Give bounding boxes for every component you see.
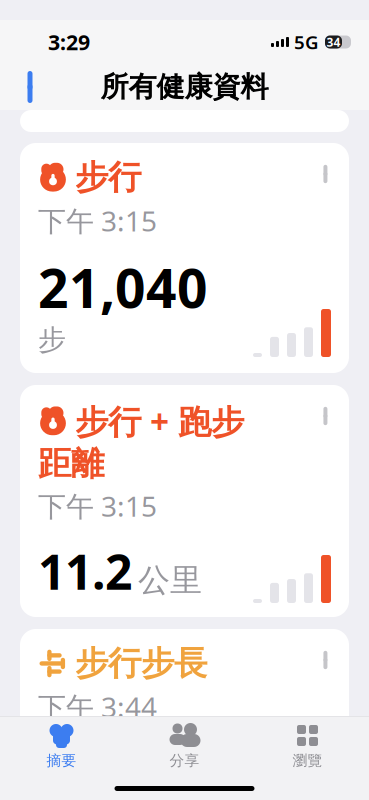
staticText: 34	[326, 34, 340, 50]
staticText: 步行步長	[75, 643, 207, 684]
staticText: 下午 3:44	[38, 688, 157, 725]
staticText: 5G	[294, 30, 319, 54]
staticText: 下午 3:15	[38, 202, 157, 239]
staticText: 瀏覽	[292, 751, 322, 769]
button[interactable]: Back	[8, 65, 52, 109]
staticText: 步行 + 跑步	[75, 399, 244, 443]
button[interactable]: 步行	[20, 143, 349, 373]
staticText: 步	[38, 323, 66, 357]
button[interactable]: 分享	[123, 715, 246, 769]
staticText: 距離	[38, 443, 104, 484]
staticText: 公里	[138, 561, 202, 600]
staticText: 11.2	[38, 539, 132, 603]
staticText: 所有健康資料	[100, 70, 268, 104]
button[interactable]: 步行 + 跑步	[20, 385, 349, 617]
button[interactable]: 摘要	[0, 715, 123, 769]
staticText: 3:29	[48, 28, 90, 56]
staticText: 下午 3:15	[38, 487, 157, 524]
staticText: 分享	[169, 751, 199, 769]
button[interactable]: 步行步長	[20, 629, 349, 800]
staticText: 步行	[75, 157, 141, 198]
staticText: 21,040	[38, 252, 208, 323]
staticText: 摘要	[46, 751, 76, 769]
button[interactable]: 瀏覽	[246, 715, 369, 769]
